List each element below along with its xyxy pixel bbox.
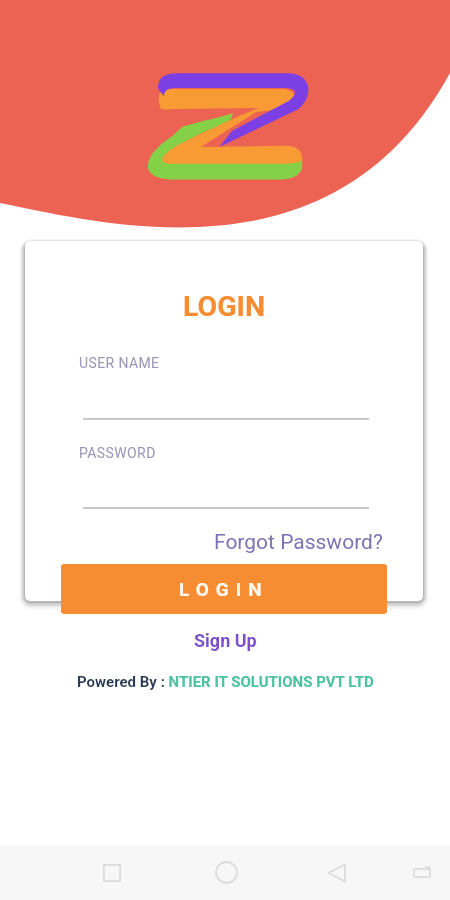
- button[interactable]: Assistant: [170, 845, 282, 900]
- staticText: PASSWORD: [79, 445, 156, 461]
- button[interactable]: Home: [56, 845, 168, 900]
- button[interactable]: LOGIN: [61, 564, 387, 614]
- button[interactable]: Forgot Password?: [214, 530, 383, 555]
- button[interactable]: Back: [280, 845, 392, 900]
- staticText: LOGIN: [183, 290, 266, 323]
- staticText: LOGIN: [179, 578, 269, 600]
- staticText: Powered By : NTIER IT SOLUTIONS PVT LTD: [77, 673, 374, 691]
- staticText: USER NAME: [79, 355, 160, 371]
- button[interactable]: Sign Up: [194, 630, 257, 651]
- button[interactable]: Switch apps: [382, 845, 450, 900]
